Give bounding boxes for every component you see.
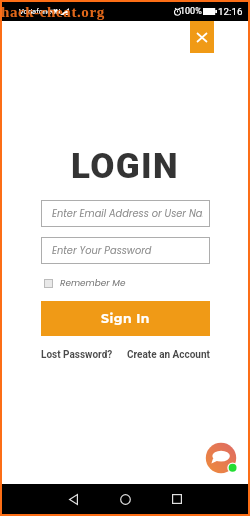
staticText: hack-cheat.org [1, 4, 105, 21]
staticText: LOGIN [71, 146, 180, 187]
button[interactable]: Create an Account [127, 349, 210, 361]
button[interactable]: Home [115, 489, 135, 509]
button[interactable]: Enter Your Password [41, 237, 210, 264]
staticText: Sign In [101, 311, 150, 326]
button[interactable]: Recent apps [167, 489, 187, 509]
button[interactable]: Chat [204, 441, 240, 477]
staticText: Vodafone-IN [19, 7, 61, 16]
button[interactable]: Enter Email Address or User Name [41, 200, 210, 227]
button[interactable]: Back [63, 489, 83, 509]
button[interactable]: Close [190, 21, 214, 53]
staticText: Enter Your Password [52, 244, 152, 258]
button[interactable]: Lost Password? [41, 349, 113, 361]
staticText: Remember Me [60, 277, 126, 289]
staticText: 12:16 [218, 6, 243, 17]
staticText: 100% [180, 6, 202, 17]
button[interactable]: Sign In [41, 301, 210, 336]
button[interactable]: Remember Me [41, 277, 126, 289]
staticText: Enter Email Address or User Name [52, 207, 203, 221]
